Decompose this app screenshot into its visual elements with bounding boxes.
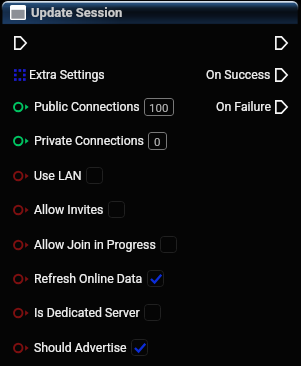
button[interactable]: Allow Join in Progress (160, 236, 177, 253)
button[interactable]: Value 0 (148, 132, 167, 150)
staticText: On Failure (216, 100, 271, 114)
other: Exec input (14, 36, 27, 50)
button[interactable]: Is Dedicated Server (144, 304, 161, 321)
button[interactable]: Should Advertise (131, 339, 148, 356)
staticText: Allow Invites (34, 203, 104, 217)
button[interactable]: Allow Invites (108, 201, 125, 218)
button[interactable]: Refresh Online Data (147, 270, 164, 287)
staticText: Is Dedicated Server (34, 306, 140, 320)
staticText: Should Advertise (34, 341, 127, 355)
staticText: Public Connections (34, 100, 140, 114)
staticText: Update Session (31, 5, 123, 20)
staticText: Extra Settings (29, 68, 105, 82)
button[interactable]: Use LAN (86, 167, 103, 184)
staticText: 100 (149, 101, 169, 114)
staticText: Refresh Online Data (34, 272, 143, 286)
staticText: On Success (206, 68, 271, 82)
staticText: Use LAN (34, 169, 82, 183)
other: Exec output (275, 36, 288, 50)
button[interactable]: Update Session (0, 0, 301, 24)
staticText: Allow Join in Progress (34, 238, 156, 252)
button[interactable]: Value 100 (144, 98, 174, 116)
staticText: Private Connections (34, 134, 144, 148)
staticText: 0 (154, 135, 161, 148)
